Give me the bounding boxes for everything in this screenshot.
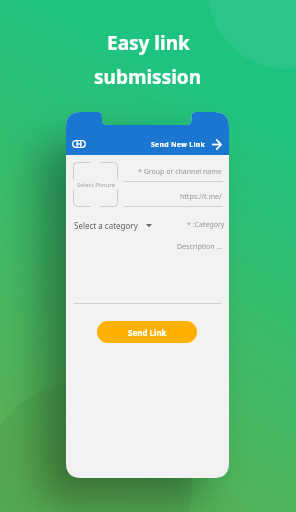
staticText: submission <box>94 64 202 90</box>
staticText: * Group or channel name <box>138 167 222 177</box>
button[interactable]: Select Picture <box>73 162 118 207</box>
staticText: Send New Link <box>151 140 206 149</box>
staticText: https://t.me/ <box>180 192 222 202</box>
staticText: Select Picture <box>77 181 115 189</box>
staticText: * :Category <box>187 220 225 230</box>
staticText: Description ... <box>177 242 223 252</box>
staticText: Easy link <box>107 30 190 56</box>
button[interactable]: Select a category <box>74 220 152 231</box>
staticText: Send Link <box>128 327 167 338</box>
button[interactable]: Send Link <box>97 321 197 343</box>
button[interactable]: Link <box>67 133 91 155</box>
staticText: Select a category <box>74 220 138 231</box>
button[interactable]: Submit link <box>211 138 223 150</box>
